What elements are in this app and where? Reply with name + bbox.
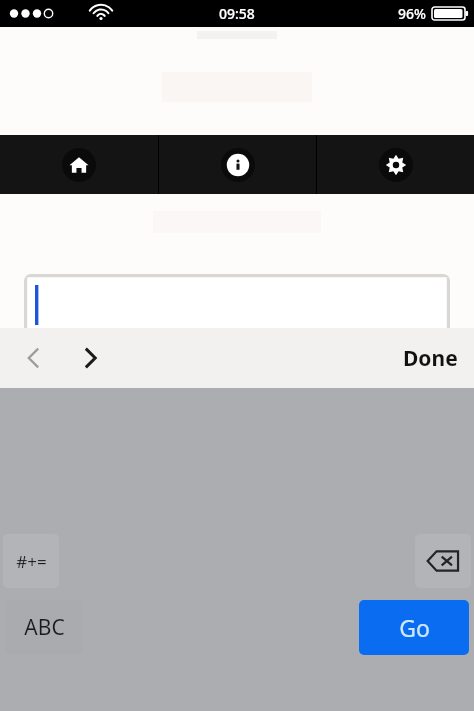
button[interactable]: #+=: [3, 534, 59, 588]
staticText: Done: [403, 344, 458, 373]
button[interactable]: Backspace: [415, 534, 471, 588]
staticText: Go: [399, 612, 430, 643]
button[interactable]: Go: [359, 600, 469, 655]
staticText: ABC: [24, 613, 65, 642]
button[interactable]: Home: [0, 135, 158, 194]
staticText: 09:58: [219, 4, 255, 23]
button[interactable]: Done: [403, 344, 458, 373]
staticText: 96%: [398, 4, 426, 23]
button[interactable]: [24, 274, 450, 328]
button[interactable]: Next field: [70, 338, 110, 378]
button[interactable]: Info: [159, 135, 316, 194]
staticText: #+=: [16, 550, 47, 573]
button[interactable]: ABC: [5, 600, 83, 655]
button[interactable]: Settings: [317, 135, 474, 194]
button[interactable]: Previous field: [14, 338, 54, 378]
